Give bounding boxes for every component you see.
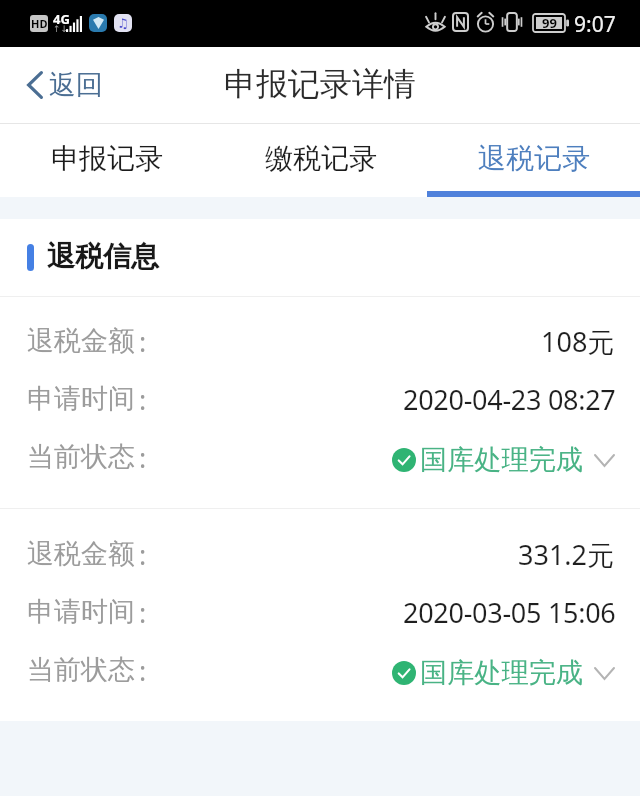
staticText: 当前状态 (27, 440, 135, 474)
button[interactable]: 退税记录 (427, 124, 640, 197)
staticText: 国库处理完成 (420, 443, 584, 477)
staticText: 2020-03-05 15:06 (403, 594, 616, 631)
button[interactable]: 缴税记录 (214, 124, 427, 197)
staticText: : (139, 594, 147, 631)
staticText: ↑↓ (53, 24, 69, 34)
button[interactable]: 退税金额 (0, 525, 640, 583)
button[interactable]: 退税金额 (0, 312, 640, 370)
staticText: : (139, 439, 147, 476)
staticText: 108元 (541, 323, 615, 360)
button[interactable]: 当前状态 (0, 428, 640, 486)
staticText: 申请时间 (27, 382, 135, 416)
staticText: 国库处理完成 (420, 656, 584, 690)
button[interactable]: 返回 (0, 47, 121, 124)
button[interactable]: 申请时间 (0, 370, 640, 428)
staticText: 4G (53, 10, 70, 28)
staticText: ♫ (117, 16, 129, 31)
staticText: 退税金额 (27, 537, 135, 571)
staticText: 99 (542, 14, 557, 32)
staticText: 缴税记录 (265, 141, 377, 176)
button[interactable]: 当前状态 (0, 641, 640, 699)
staticText: 申报记录 (51, 141, 163, 176)
staticText: HD (31, 16, 48, 31)
staticText: 退税金额 (27, 324, 135, 358)
other: Expand details (593, 662, 615, 684)
other: Expand details (593, 449, 615, 471)
staticText: 退税信息 (47, 239, 159, 274)
staticText: : (139, 536, 147, 573)
staticText: 返回 (49, 68, 103, 102)
button[interactable]: 申报记录 (0, 124, 214, 197)
staticText: 当前状态 (27, 653, 135, 687)
staticText: 2020-04-23 08:27 (403, 381, 616, 418)
staticText: : (139, 381, 147, 418)
staticText: 退税记录 (478, 141, 590, 176)
button[interactable]: 申请时间 (0, 583, 640, 641)
staticText: 申报记录详情 (224, 64, 416, 104)
staticText: 申请时间 (27, 595, 135, 629)
staticText: 331.2元 (518, 536, 615, 573)
staticText: 9:07 (574, 10, 616, 39)
staticText: : (139, 652, 147, 689)
staticText: : (139, 323, 147, 360)
